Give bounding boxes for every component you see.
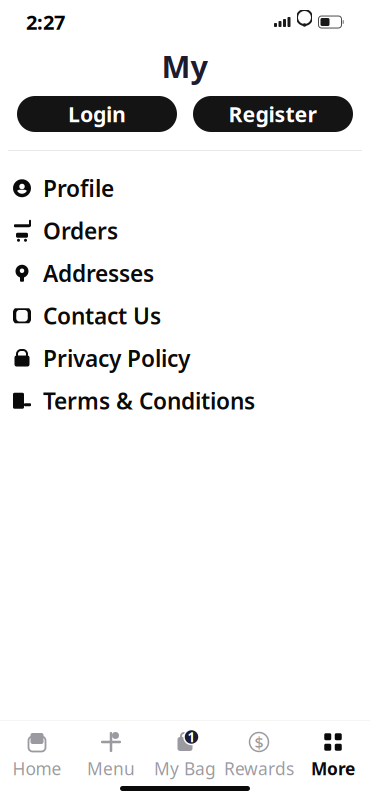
button[interactable]: More [296,730,370,780]
button[interactable]: Register [193,96,353,132]
button[interactable]: Orders [0,209,370,252]
staticText: 2:27 [26,9,65,35]
button[interactable]: 1 [148,730,222,780]
button[interactable]: $ [222,730,296,780]
staticText: Profile [43,173,114,203]
staticText: Addresses [43,258,154,288]
button[interactable]: Terms & Conditions [0,379,370,422]
staticText: My [161,46,208,86]
staticText: More [311,757,355,780]
staticText: Login [68,100,126,128]
button[interactable]: Addresses [0,252,370,294]
button[interactable]: Login [17,96,177,132]
staticText: $ [254,731,263,753]
button[interactable]: Contact Us [0,294,370,337]
staticText: Privacy Policy [43,343,190,373]
staticText: Menu [87,757,135,780]
button[interactable]: Home [0,730,74,780]
button[interactable]: Profile [0,167,370,209]
staticText: 1 [187,728,195,746]
staticText: Home [12,757,61,780]
staticText: My Bag [154,757,216,780]
staticText: Register [228,100,317,128]
staticText: Terms & Conditions [43,386,255,416]
button[interactable]: Privacy Policy [0,337,370,379]
staticText: Orders [43,216,118,246]
staticText: Rewards [224,757,294,780]
staticText: Contact Us [43,301,161,331]
button[interactable]: Menu [74,730,148,780]
